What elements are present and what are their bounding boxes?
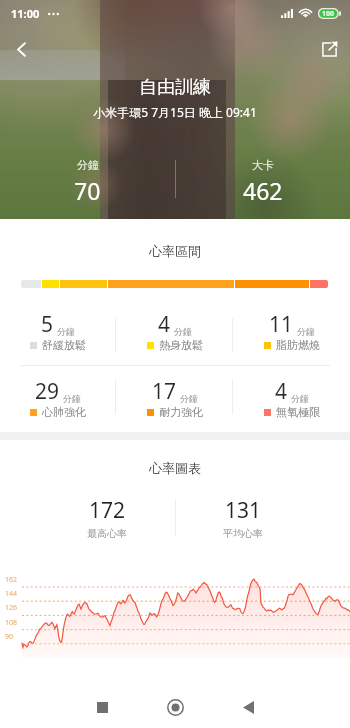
staticText: 心肺強化 (42, 405, 86, 419)
staticText: 平均心率 (223, 527, 263, 538)
staticText: 脂肪燃燒 (276, 338, 320, 352)
button[interactable]: 29 (0, 377, 116, 424)
staticText: 11:00 (11, 6, 40, 21)
staticText: 5 (41, 310, 54, 339)
staticText: 心率圖表 (0, 460, 350, 476)
staticText: 29 (35, 377, 60, 406)
staticText: 4 (158, 310, 171, 339)
staticText: 舒緩放鬆 (42, 338, 86, 352)
button[interactable]: Back (212, 686, 285, 728)
button[interactable]: 11 (233, 310, 350, 365)
staticText: 108 (5, 618, 18, 628)
staticText: 11 (269, 310, 294, 339)
staticText: 分鐘 (57, 326, 75, 337)
staticText: 462 (243, 175, 283, 206)
button[interactable]: Recents (65, 686, 139, 728)
staticText: 自由訓練 (139, 76, 211, 99)
staticText: 分鐘 (174, 326, 192, 337)
staticText: 無氧極限 (276, 405, 320, 419)
button[interactable]: Back (4, 32, 38, 66)
staticText: 最高心率 (87, 527, 127, 538)
staticText: 144 (5, 589, 18, 599)
staticText: 分鐘 (291, 393, 309, 404)
staticText: 大卡 (252, 158, 274, 172)
staticText: 90 (5, 632, 14, 642)
staticText: 分鐘 (180, 393, 198, 404)
staticText: 162 (5, 575, 18, 585)
button[interactable]: Share (312, 32, 346, 66)
staticText: 分鐘 (77, 158, 99, 172)
staticText: 分鐘 (63, 393, 81, 404)
button[interactable]: 5 (0, 310, 116, 365)
staticText: 126 (5, 603, 18, 613)
staticText: 17 (152, 377, 177, 406)
staticText: 131 (225, 496, 262, 525)
button[interactable]: 17 (116, 377, 233, 424)
staticText: 小米手環5 7月15日 晚上 09:41 (93, 104, 257, 120)
staticText: 心率區間 (0, 243, 350, 259)
staticText: 172 (89, 496, 126, 525)
staticText: 分鐘 (297, 326, 315, 337)
staticText: 4 (275, 377, 288, 406)
button[interactable]: 4 (116, 310, 233, 365)
staticText: 耐力強化 (159, 405, 203, 419)
staticText: 熱身放鬆 (159, 338, 203, 352)
button[interactable]: 4 (233, 377, 350, 424)
staticText: 100 (322, 9, 335, 19)
button[interactable]: Home (139, 686, 212, 728)
staticText: 70 (74, 175, 101, 206)
